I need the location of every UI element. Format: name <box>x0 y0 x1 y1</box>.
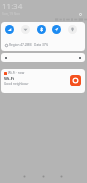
staticText: Region 47.2MB Data 37% <box>9 43 49 47</box>
button[interactable]: Toggle <box>52 25 61 34</box>
button[interactable]: Settings <box>77 11 83 17</box>
button[interactable]: Toggle <box>37 25 46 34</box>
button[interactable]: Home <box>37 170 49 182</box>
button[interactable]: Brightness <box>1 53 85 62</box>
button[interactable]: Toggle <box>21 25 30 34</box>
staticText: Sun, 19 Nov <box>2 12 20 16</box>
staticText: Good neighbour <box>4 82 29 86</box>
button[interactable]: Back <box>18 170 30 182</box>
button[interactable]: Wi-Fi · now <box>1 69 85 93</box>
button[interactable]: Toggle <box>68 25 77 34</box>
staticText: Wi-Fi · now <box>8 71 25 75</box>
staticText: 11:34 <box>2 0 23 11</box>
button[interactable]: Recents <box>55 170 67 182</box>
button[interactable]: App icon <box>70 75 81 86</box>
button[interactable]: Toggle <box>5 25 14 34</box>
staticText: Wi-Fi <box>4 76 15 82</box>
